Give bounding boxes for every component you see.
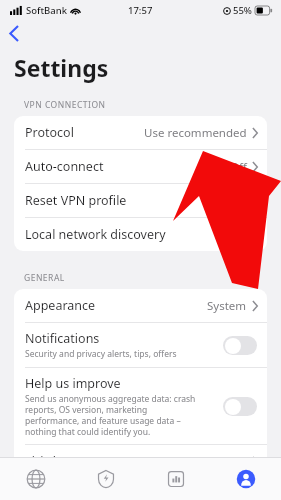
staticText: System (207, 298, 247, 314)
button[interactable]: Appearance (14, 289, 267, 322)
staticText: Off (230, 159, 247, 175)
staticText: Help us improve (25, 375, 121, 392)
staticText: Security and privacy alerts, tips, offer… (25, 348, 177, 360)
button[interactable]: Account (211, 458, 281, 500)
button[interactable]: Notifications (14, 323, 267, 367)
staticText: Notifications (25, 330, 100, 347)
button[interactable]: Browse (0, 458, 71, 500)
staticText: 55% (233, 4, 252, 17)
button[interactable]: Protection (71, 458, 141, 500)
button[interactable]: Notifications (223, 336, 257, 355)
staticText: 17:57 (128, 4, 153, 17)
button[interactable]: Help us improve (223, 397, 257, 416)
staticText: Reset VPN profile (25, 192, 127, 209)
button[interactable]: Protocol (14, 116, 267, 149)
staticText: Send us anonymous aggregate data: crash … (25, 393, 196, 437)
button[interactable]: Siri shortcuts (14, 445, 267, 478)
button[interactable]: Reset VPN profile (14, 184, 267, 217)
staticText: Protocol (25, 124, 74, 141)
button[interactable]: Back (0, 20, 40, 46)
button[interactable]: Help us improve (14, 368, 267, 444)
staticText: SoftBank (26, 4, 67, 17)
button[interactable]: Auto-connect (14, 150, 267, 183)
staticText: Appearance (25, 297, 96, 314)
staticText: GENERAL (24, 272, 65, 284)
staticText: Settings (14, 52, 109, 83)
staticText: Auto-connect (25, 158, 104, 175)
button[interactable]: Stats (141, 458, 211, 500)
staticText: VPN CONNECTION (24, 99, 106, 111)
staticText: Local network discovery (25, 226, 166, 243)
staticText: Siri shortcuts (25, 453, 102, 470)
button[interactable]: Local network discovery (14, 218, 267, 251)
staticText: Use recommended (144, 125, 247, 141)
